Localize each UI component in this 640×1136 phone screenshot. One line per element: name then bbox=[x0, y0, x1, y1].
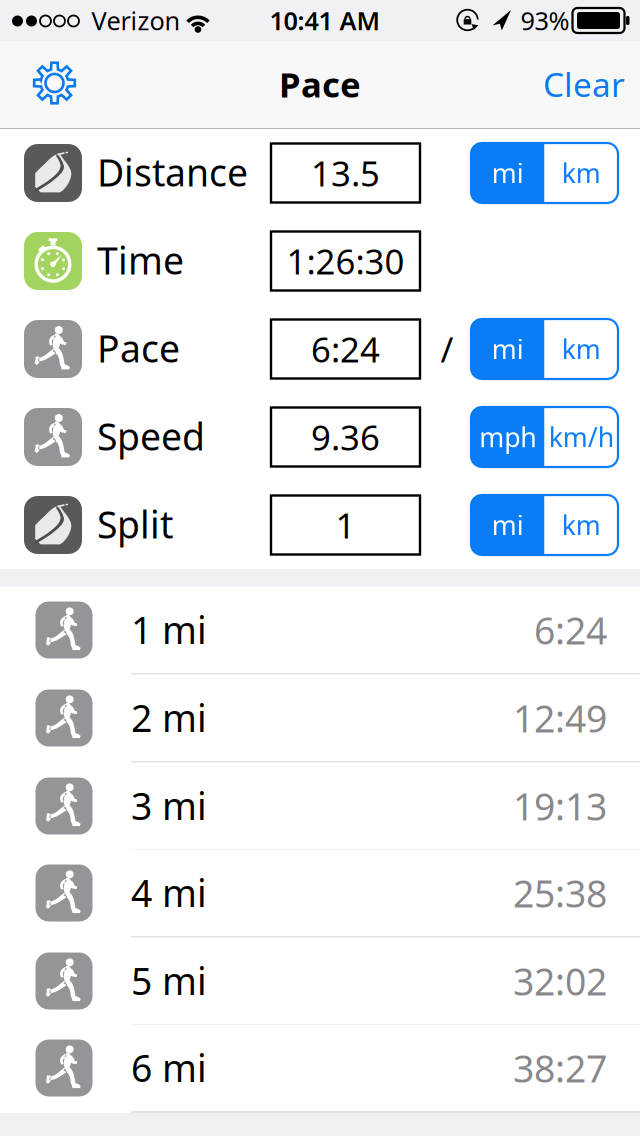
staticText: 12:49 bbox=[513, 693, 607, 743]
button[interactable]: 1 mi bbox=[0, 586, 640, 674]
staticText: 9.36 bbox=[311, 414, 380, 460]
staticText: Pace bbox=[97, 323, 180, 373]
staticText: km bbox=[562, 331, 601, 367]
staticText: mi bbox=[492, 507, 524, 543]
staticText: 13.5 bbox=[311, 150, 380, 196]
staticText: 3 mi bbox=[131, 781, 207, 830]
button[interactable]: mi bbox=[471, 319, 544, 379]
staticText: mi bbox=[492, 155, 524, 191]
staticText: 1 bbox=[335, 502, 355, 548]
button[interactable]: 5 mi bbox=[0, 937, 640, 1025]
staticText: 1 mi bbox=[131, 605, 207, 654]
staticText: 1:26:30 bbox=[286, 238, 404, 284]
staticText: 32:02 bbox=[513, 956, 607, 1006]
button[interactable]: km bbox=[544, 143, 618, 203]
staticText: 5 mi bbox=[131, 956, 207, 1005]
button[interactable]: 9.36 bbox=[271, 407, 420, 466]
staticText: 6:24 bbox=[534, 605, 607, 655]
staticText: 38:27 bbox=[513, 1043, 607, 1093]
button[interactable]: Settings bbox=[12, 41, 96, 125]
staticText: mph bbox=[479, 419, 536, 455]
staticText: Verizon bbox=[91, 4, 180, 37]
button[interactable]: km bbox=[544, 319, 618, 379]
staticText: mi bbox=[492, 331, 524, 367]
staticText: 93% bbox=[520, 4, 569, 37]
staticText: Split bbox=[97, 499, 173, 549]
staticText: 6 mi bbox=[131, 1043, 207, 1092]
staticText: 2 mi bbox=[131, 693, 207, 742]
staticText: km bbox=[562, 155, 601, 191]
staticText: Speed bbox=[97, 411, 205, 461]
staticText: 19:13 bbox=[513, 781, 607, 831]
button[interactable]: 1 bbox=[271, 495, 420, 554]
button[interactable]: km bbox=[544, 495, 618, 555]
staticText: Distance bbox=[97, 147, 248, 197]
staticText: Pace bbox=[279, 61, 361, 107]
staticText: 6:24 bbox=[311, 326, 380, 372]
button[interactable]: mi bbox=[471, 143, 544, 203]
button[interactable]: 1:26:30 bbox=[271, 231, 420, 290]
staticText: 25:38 bbox=[513, 868, 607, 918]
staticText: km/h bbox=[549, 419, 614, 455]
button[interactable]: 6:24 bbox=[271, 319, 420, 378]
button[interactable]: 2 mi bbox=[0, 674, 640, 762]
button[interactable]: 4 mi bbox=[0, 849, 640, 937]
button[interactable]: 13.5 bbox=[271, 143, 420, 202]
staticText: 4 mi bbox=[131, 868, 207, 917]
staticText: Time bbox=[97, 235, 184, 285]
button[interactable]: mph bbox=[471, 407, 544, 467]
button[interactable]: Clear bbox=[529, 42, 639, 126]
button[interactable]: km/h bbox=[544, 407, 618, 467]
staticText: km bbox=[562, 507, 601, 543]
staticText: 10:41 AM bbox=[269, 4, 380, 37]
button[interactable]: 3 mi bbox=[0, 762, 640, 850]
button[interactable]: 6 mi bbox=[0, 1024, 640, 1112]
staticText: Clear bbox=[543, 62, 625, 106]
staticText: / bbox=[440, 326, 453, 372]
button[interactable]: mi bbox=[471, 495, 544, 555]
